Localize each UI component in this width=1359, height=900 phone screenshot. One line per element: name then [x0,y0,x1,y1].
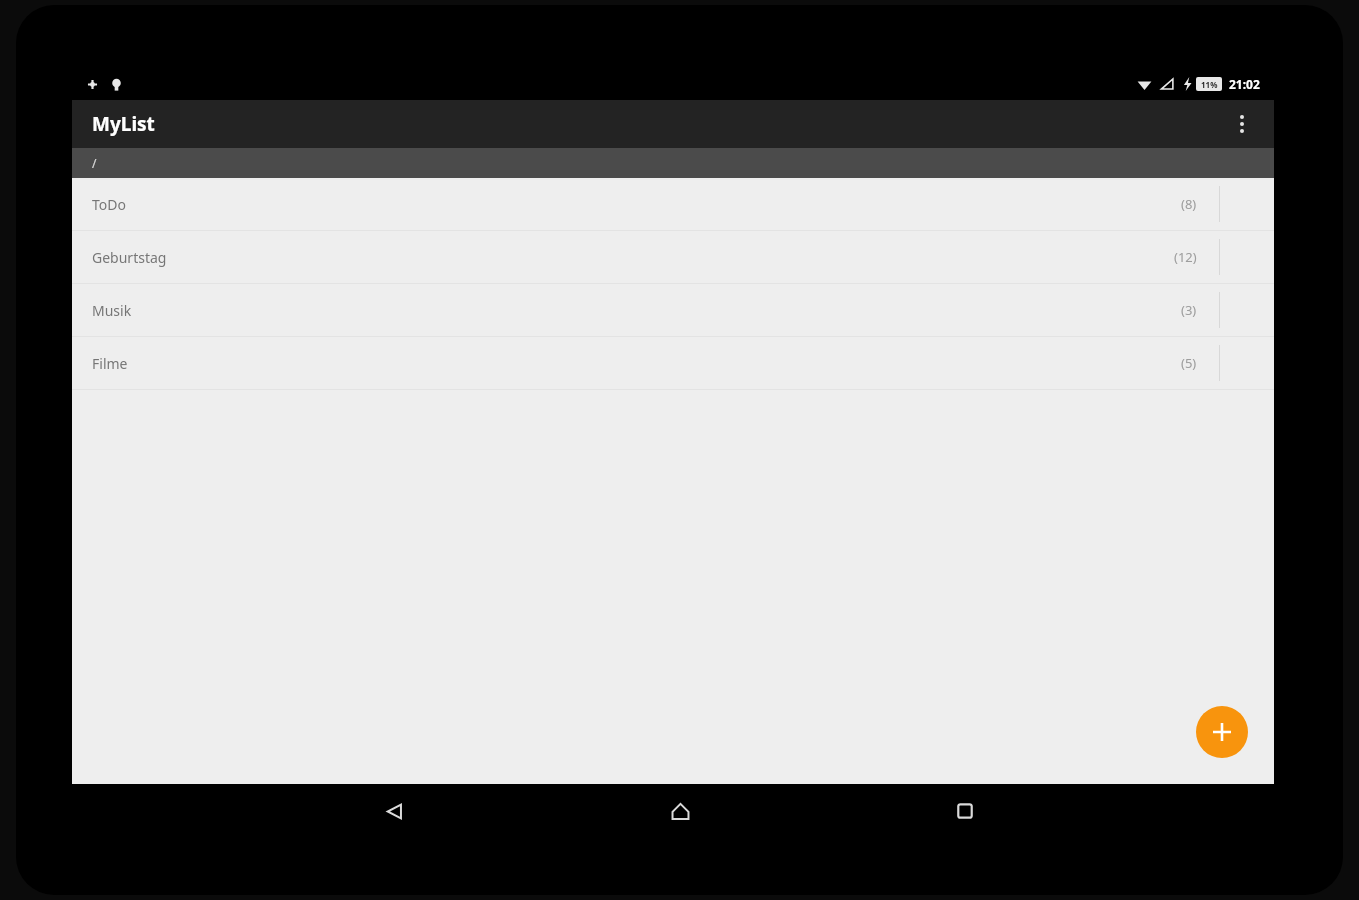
staticText: 11% [1201,79,1218,90]
button[interactable]: Musik [72,284,1274,337]
staticText: / [92,155,97,171]
staticText: ToDo [92,195,126,214]
staticText: Musik [92,301,132,320]
button[interactable]: ToDo [72,178,1274,231]
button[interactable]: Home [653,784,707,838]
button[interactable]: Filme [72,337,1274,390]
staticText: (3) [1181,301,1197,319]
button[interactable]: More options [1220,102,1264,146]
staticText: (8) [1181,195,1197,213]
staticText: MyList [92,111,155,137]
staticText: (12) [1174,248,1197,266]
staticText: Filme [92,354,128,373]
button[interactable]: Geburtstag [72,231,1274,284]
staticText: 21:02 [1229,76,1260,92]
staticText: Geburtstag [92,248,167,267]
button[interactable]: Recent apps [938,784,992,838]
button[interactable]: Add list [1196,706,1248,758]
button[interactable]: Back [367,784,421,838]
staticText: (5) [1181,354,1197,372]
